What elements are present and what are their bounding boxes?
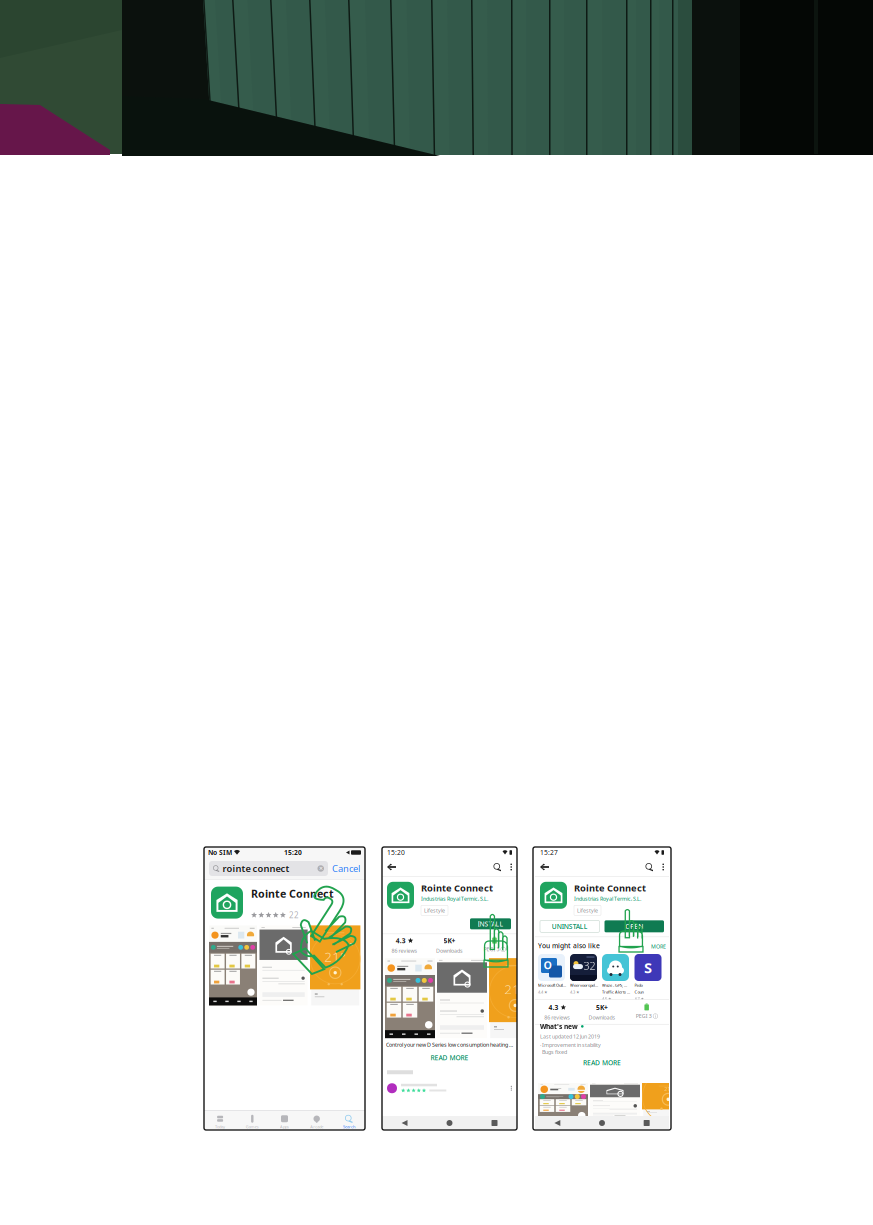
staticText: 4.5 ★ [602, 996, 612, 1001]
staticText: OPEN [625, 922, 643, 931]
button[interactable]: READ MORE [535, 1057, 669, 1069]
staticText: PEGI 3 ⓘ [483, 946, 505, 953]
staticText: You might also like [538, 941, 600, 950]
staticText: No SIM [208, 848, 232, 857]
staticText: rointe connect [222, 862, 289, 875]
button[interactable]: Search [493, 863, 501, 871]
button[interactable]: Games [236, 1111, 268, 1130]
button[interactable]: Back [382, 1120, 427, 1126]
button[interactable]: More options [662, 863, 664, 870]
button[interactable]: Recents [624, 1120, 669, 1126]
staticText: Control your new D Series low consumptio… [386, 1041, 513, 1048]
staticText: 5K+ [443, 936, 455, 945]
staticText: ✕ [319, 865, 323, 872]
button[interactable]: O [538, 954, 566, 1003]
staticText: Apps [280, 1124, 289, 1129]
staticText: 4.3 [396, 936, 406, 945]
staticText: Industrias Royal Termic, S.L. [421, 895, 488, 902]
button[interactable]: More options [510, 863, 512, 870]
staticText: Today [215, 1124, 225, 1129]
staticText: 21° [324, 948, 346, 965]
button[interactable]: Apps [268, 1111, 301, 1130]
staticText: O [543, 958, 551, 972]
staticText: Rointe Connect [574, 882, 646, 894]
button[interactable]: READ MORE [382, 1052, 517, 1063]
staticText: Traffic Alerts & Li.. [602, 989, 630, 995]
staticText: INSTALL [477, 919, 503, 928]
staticText: MORE [651, 943, 666, 950]
button[interactable]: Arcade [301, 1111, 333, 1130]
staticText: Games [246, 1124, 259, 1129]
staticText: PEGI 3 ⓘ [636, 1012, 658, 1019]
button[interactable]: Back [540, 863, 549, 871]
staticText: Industrias Royal Termic, S.L. [574, 895, 641, 902]
staticText: Search [343, 1124, 355, 1129]
staticText: READ MORE [583, 1058, 621, 1067]
button[interactable]: Back [535, 1120, 580, 1126]
staticText: 86 reviews [391, 947, 417, 954]
button[interactable]: MORE [651, 943, 666, 950]
button[interactable]: 32 [570, 954, 598, 1003]
staticText: 22 [289, 910, 299, 920]
button[interactable]: Home [427, 1120, 472, 1126]
button[interactable]: Cancel [332, 862, 360, 875]
staticText: 4.4 ★ [538, 989, 548, 995]
staticText: READ MORE [430, 1053, 468, 1062]
staticText: Last updated 12 Jun 2019 [540, 1033, 600, 1040]
staticText: S [644, 958, 652, 977]
staticText: Downloads [588, 1014, 615, 1021]
staticText: Arcade [310, 1124, 323, 1129]
staticText: Rointe Connect [251, 887, 334, 901]
staticText: 86 reviews [544, 1014, 570, 1021]
staticText: Bugs fixed [540, 1048, 567, 1056]
staticText: 15:20 [284, 848, 302, 857]
staticText: 4.3 [548, 1003, 558, 1012]
button[interactable]: Waze - GPS, Maps, [602, 954, 630, 1003]
staticText: 15:20 [387, 848, 405, 857]
staticText: Lifestyle [424, 907, 445, 914]
staticText: UNINSTALL [552, 922, 588, 931]
button[interactable]: Recents [472, 1120, 517, 1126]
staticText: 5K+ [596, 1003, 608, 1012]
button[interactable]: INSTALL [470, 918, 511, 929]
staticText: Downloads [436, 947, 463, 954]
button[interactable]: Back [387, 863, 396, 871]
staticText: 32 [583, 958, 595, 973]
button[interactable]: UNINSTALL [540, 920, 599, 932]
button[interactable]: Today [204, 1111, 236, 1130]
staticText: What's new [540, 1022, 578, 1031]
staticText: Waze - GPS, Maps, [602, 982, 630, 988]
staticText: Weervoorspelling [570, 982, 598, 988]
button[interactable]: Search [333, 1111, 365, 1130]
staticText: · Improvement in stability [540, 1041, 601, 1048]
button[interactable]: OPEN [604, 920, 664, 932]
staticText: Cancel [332, 862, 360, 875]
staticText: Coun [634, 989, 643, 995]
button[interactable]: Search [645, 863, 653, 871]
staticText: Lifestyle [577, 907, 598, 914]
staticText: Pedo [634, 982, 642, 988]
staticText: 21° [664, 1085, 672, 1092]
staticText: 4.3 ★ [570, 989, 580, 995]
staticText: 15:27 [540, 848, 558, 857]
staticText: 4.7 ★ [634, 996, 644, 1001]
button[interactable]: Home [580, 1120, 624, 1126]
button[interactable]: S [634, 954, 662, 1003]
staticText: 21° [504, 980, 526, 998]
staticText: Rointe Connect [421, 882, 493, 894]
staticText: Microsoft Outlook [538, 982, 566, 988]
